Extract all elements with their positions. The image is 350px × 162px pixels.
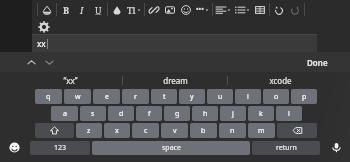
staticText: j — [232, 109, 234, 119]
staticText: u — [218, 92, 223, 102]
button[interactable]: k — [248, 106, 274, 121]
button[interactable]: Next field — [40, 53, 58, 71]
staticText: ••• — [196, 5, 204, 15]
button[interactable]: Emoji — [178, 1, 194, 18]
staticText: Tl — [127, 4, 136, 16]
staticText: 123 — [54, 143, 67, 153]
button[interactable]: l — [276, 106, 302, 121]
staticText: i — [247, 92, 249, 102]
button[interactable]: space — [92, 141, 250, 155]
button[interactable]: f — [136, 106, 162, 121]
button[interactable]: q — [35, 89, 62, 104]
staticText: v — [173, 126, 177, 136]
staticText: b — [201, 126, 206, 136]
staticText: p — [302, 92, 307, 102]
button[interactable]: a — [51, 106, 78, 121]
button[interactable]: Bold — [58, 1, 74, 18]
staticText: x — [115, 126, 119, 136]
button[interactable]: m — [248, 123, 275, 138]
staticText: f — [148, 109, 151, 119]
staticText: t — [163, 92, 166, 102]
staticText: y — [190, 92, 194, 102]
button[interactable]: Highlight — [109, 1, 125, 18]
button[interactable]: Redo — [287, 1, 303, 18]
button[interactable]: Settings — [36, 19, 52, 34]
button[interactable]: n — [219, 123, 246, 138]
button[interactable]: 123 — [30, 141, 90, 155]
button[interactable]: j — [220, 106, 246, 121]
button[interactable]: c — [132, 123, 159, 138]
staticText: k — [259, 109, 263, 119]
button[interactable]: Image — [162, 1, 178, 18]
staticText: xx — [37, 38, 46, 49]
staticText: dream — [163, 75, 188, 86]
staticText: m — [258, 126, 265, 136]
button[interactable]: h — [192, 106, 218, 121]
staticText: I — [80, 4, 84, 16]
button[interactable]: t — [151, 89, 177, 104]
button[interactable]: y — [179, 89, 205, 104]
button[interactable]: i — [235, 89, 261, 104]
staticText: a — [63, 109, 67, 119]
button[interactable]: Done — [303, 55, 332, 70]
button[interactable]: o — [263, 89, 289, 104]
staticText: w — [75, 92, 81, 102]
button[interactable]: z — [76, 123, 102, 138]
staticText: return — [276, 143, 297, 153]
staticText: s — [91, 109, 95, 119]
button[interactable]: dream — [123, 72, 227, 89]
button[interactable]: Text style — [125, 1, 143, 18]
button[interactable]: r — [122, 89, 149, 104]
button[interactable]: Table — [252, 1, 268, 18]
button[interactable]: Emoji — [6, 140, 22, 155]
button[interactable]: s — [80, 106, 106, 121]
staticText: xcode — [269, 75, 292, 86]
button[interactable]: More — [194, 1, 211, 18]
button[interactable]: w — [64, 89, 91, 104]
staticText: Done — [307, 57, 328, 68]
button[interactable]: “xx” — [18, 72, 122, 89]
staticText: e — [105, 92, 109, 102]
button[interactable]: xcode — [228, 72, 332, 89]
staticText: r — [134, 92, 137, 102]
staticText: h — [203, 109, 208, 119]
button[interactable]: Backspace — [277, 123, 317, 138]
button[interactable]: g — [164, 106, 190, 121]
button[interactable]: Italic — [74, 1, 90, 18]
button[interactable]: v — [161, 123, 188, 138]
button[interactable]: Previous field — [22, 53, 40, 71]
staticText: g — [175, 109, 180, 119]
button[interactable]: Link — [146, 1, 162, 18]
button[interactable]: e — [93, 89, 120, 104]
staticText: o — [274, 92, 279, 102]
button[interactable]: Text color — [39, 1, 55, 18]
button[interactable]: Underline — [90, 1, 106, 18]
button[interactable]: Dictation — [328, 140, 344, 155]
staticText: d — [119, 109, 124, 119]
staticText: n — [230, 126, 235, 136]
button[interactable]: List — [233, 1, 252, 18]
staticText: l — [288, 109, 290, 119]
button[interactable]: x — [104, 123, 130, 138]
button[interactable]: Align — [214, 1, 233, 18]
button[interactable]: Undo — [271, 1, 287, 18]
staticText: space — [162, 143, 181, 153]
staticText: z — [87, 126, 91, 136]
button[interactable]: p — [291, 89, 317, 104]
button[interactable]: d — [108, 106, 134, 121]
staticText: U — [95, 4, 102, 16]
button[interactable]: b — [190, 123, 217, 138]
staticText: “xx” — [63, 75, 78, 86]
staticText: B — [63, 4, 70, 16]
button[interactable]: return — [252, 141, 320, 155]
button[interactable]: u — [207, 89, 233, 104]
staticText: q — [46, 92, 51, 102]
staticText: c — [144, 126, 148, 136]
button[interactable]: Shift — [35, 123, 74, 138]
